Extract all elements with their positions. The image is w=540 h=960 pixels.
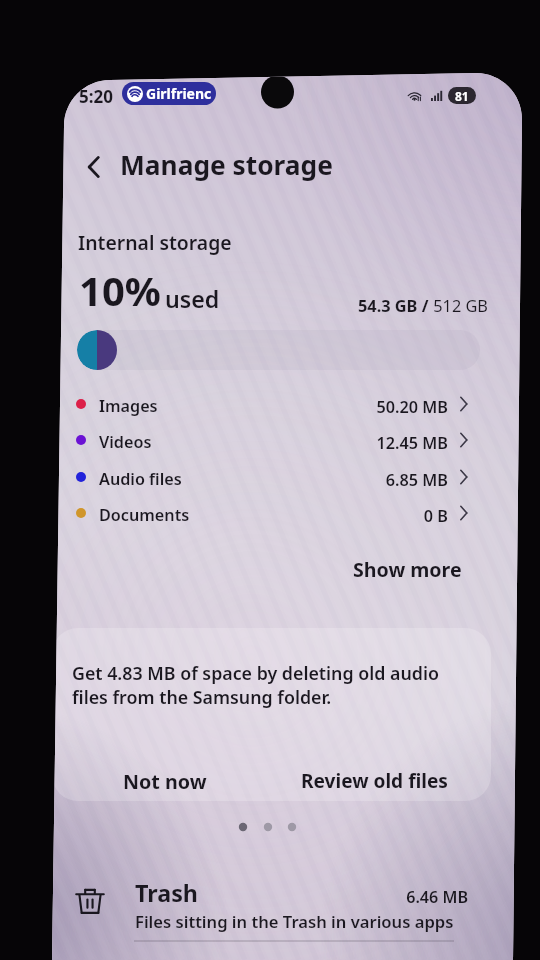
staticText: 5:20 xyxy=(79,85,113,108)
staticText: Review old files xyxy=(301,768,448,794)
staticText: 50.20 MB xyxy=(280,396,448,418)
staticText: used xyxy=(165,283,220,315)
button[interactable]: Show more xyxy=(341,547,474,592)
staticText: Show more xyxy=(353,556,462,583)
staticText: Girlfrienc xyxy=(146,84,212,103)
staticText: Documents xyxy=(99,504,190,526)
button[interactable]: Images xyxy=(50,386,530,422)
button[interactable]: Audio files xyxy=(50,459,530,495)
staticText: 6.46 MB xyxy=(368,886,468,908)
button[interactable]: Not now xyxy=(109,758,221,801)
staticText: Trash xyxy=(135,877,199,909)
staticText: 10% xyxy=(79,263,161,317)
staticText: 0 B xyxy=(280,505,448,527)
staticText: Get 4.83 MB of space by deleting old aud… xyxy=(72,661,439,709)
staticText: Internal storage xyxy=(78,229,232,255)
staticText: Not now xyxy=(123,768,207,795)
staticText: 6.85 MB xyxy=(280,469,448,491)
staticText: Files sitting in the Trash in various ap… xyxy=(135,910,454,933)
staticText: Manage storage xyxy=(120,147,333,183)
button[interactable]: Trash xyxy=(50,866,530,954)
staticText: 81 xyxy=(455,88,469,104)
staticText: 512 GB xyxy=(429,295,488,317)
button[interactable]: Review old files xyxy=(287,758,462,801)
staticText: 54.3 GB / xyxy=(358,295,429,317)
button[interactable]: Videos xyxy=(50,422,530,458)
button[interactable]: Documents xyxy=(50,495,530,531)
staticText: Audio files xyxy=(99,468,182,490)
staticText: 12.45 MB xyxy=(280,432,448,454)
staticText: Videos xyxy=(99,431,152,453)
button[interactable]: Back xyxy=(71,144,117,190)
staticText: Images xyxy=(99,395,158,417)
